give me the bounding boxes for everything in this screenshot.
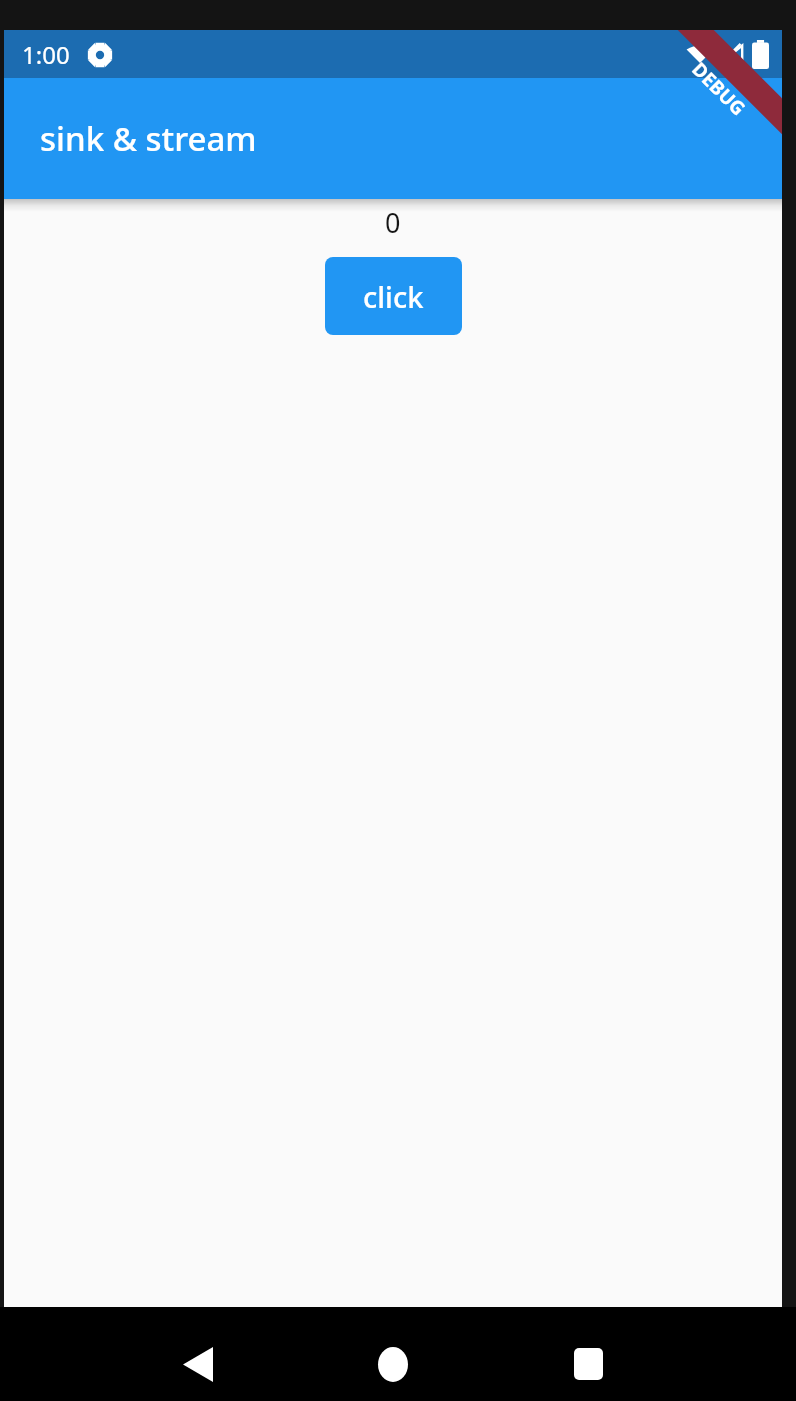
staticText: 0 (385, 204, 401, 241)
button[interactable]: Recent apps (558, 1334, 618, 1394)
staticText: 1:00 (22, 38, 70, 71)
button[interactable]: Back (168, 1334, 228, 1394)
staticText: DEBUG (686, 56, 752, 122)
staticText: sink & stream (40, 116, 257, 161)
button[interactable]: click (325, 257, 462, 335)
staticText: click (363, 277, 424, 316)
button[interactable]: Home (363, 1334, 423, 1394)
